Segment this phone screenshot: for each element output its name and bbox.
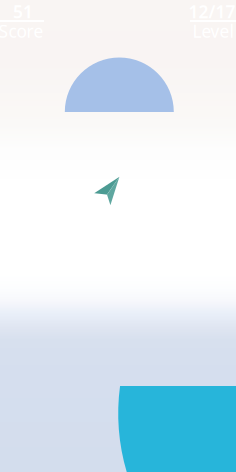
button[interactable]: 12/17 <box>175 0 236 40</box>
staticText: 12/17 <box>188 0 235 23</box>
staticText: Level <box>192 19 233 42</box>
staticText: Score <box>0 19 43 42</box>
staticText: 51 <box>13 0 33 23</box>
button[interactable]: 51 <box>0 0 59 40</box>
